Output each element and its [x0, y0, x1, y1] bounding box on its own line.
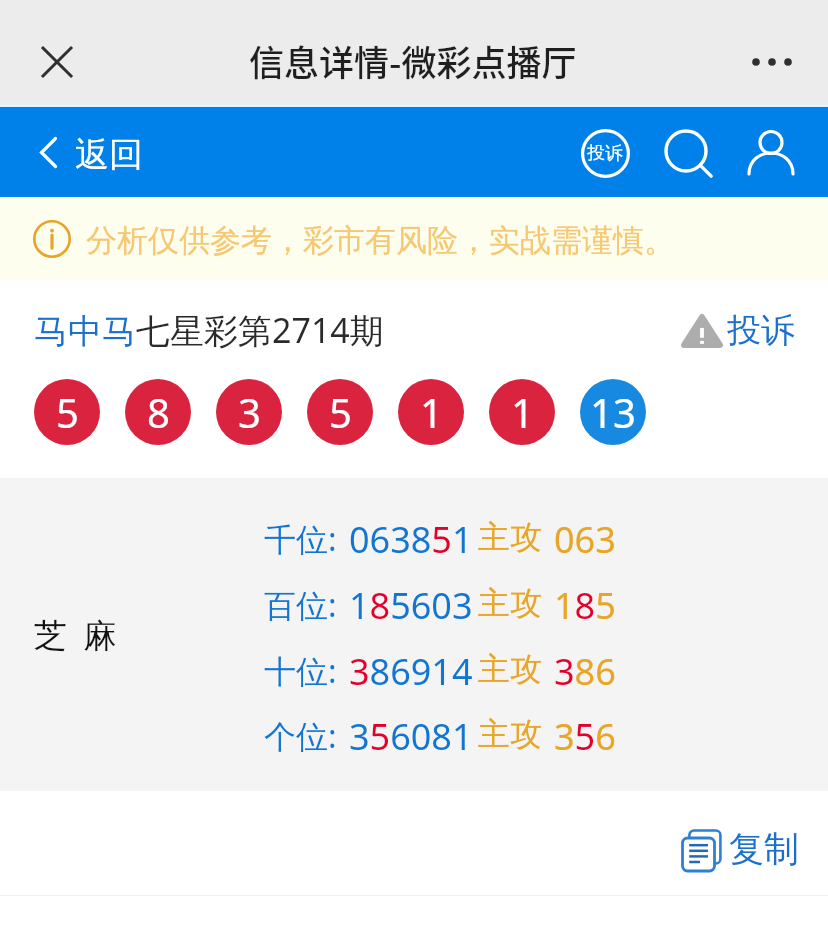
button[interactable]: Search [657, 124, 719, 186]
button[interactable]: Account [740, 122, 802, 184]
staticText: 个位: [264, 714, 337, 758]
staticText: 主攻 [478, 649, 542, 689]
staticText: 356081 [349, 712, 473, 761]
staticText: 十位: [264, 649, 337, 693]
button[interactable]: 复制 [682, 828, 799, 872]
staticText: 信息详情-微彩点播厅 [249, 35, 577, 86]
staticText: 主攻 [478, 714, 542, 754]
staticText: 063851 [349, 515, 473, 564]
staticText: 复制 [729, 827, 799, 871]
staticText: 063 [554, 515, 616, 564]
staticText: 356 [554, 712, 616, 761]
staticText: 主攻 [478, 583, 542, 623]
staticText: 投诉 [587, 142, 623, 165]
staticText: 主攻 [478, 517, 542, 557]
staticText: 5 [56, 385, 79, 439]
staticText: 芝 麻 [34, 612, 117, 657]
staticText: 1 [420, 385, 443, 439]
button[interactable]: 返回 [40, 108, 145, 197]
staticText: 8 [147, 385, 170, 439]
staticText: 386914 [349, 647, 473, 696]
button[interactable]: 投诉 [681, 309, 795, 352]
staticText: 13 [590, 385, 636, 439]
staticText: 返回 [75, 133, 143, 176]
staticText: 马中马七星彩第2714期 [34, 307, 384, 353]
staticText: 百位: [264, 583, 337, 627]
staticText: 386 [554, 647, 616, 696]
staticText: 3 [238, 385, 261, 439]
staticText: 投诉 [727, 309, 795, 352]
staticText: 1 [511, 385, 534, 439]
staticText: 分析仅供参考，彩市有风险，实战需谨慎。 [86, 221, 675, 260]
staticText: 185 [554, 581, 616, 630]
button[interactable]: Close [14, 20, 99, 104]
staticText: 185603 [349, 581, 473, 630]
button[interactable]: 投诉 [574, 122, 636, 184]
staticText: 5 [329, 385, 352, 439]
button[interactable]: More options [730, 20, 814, 104]
staticText: 千位: [264, 517, 337, 561]
